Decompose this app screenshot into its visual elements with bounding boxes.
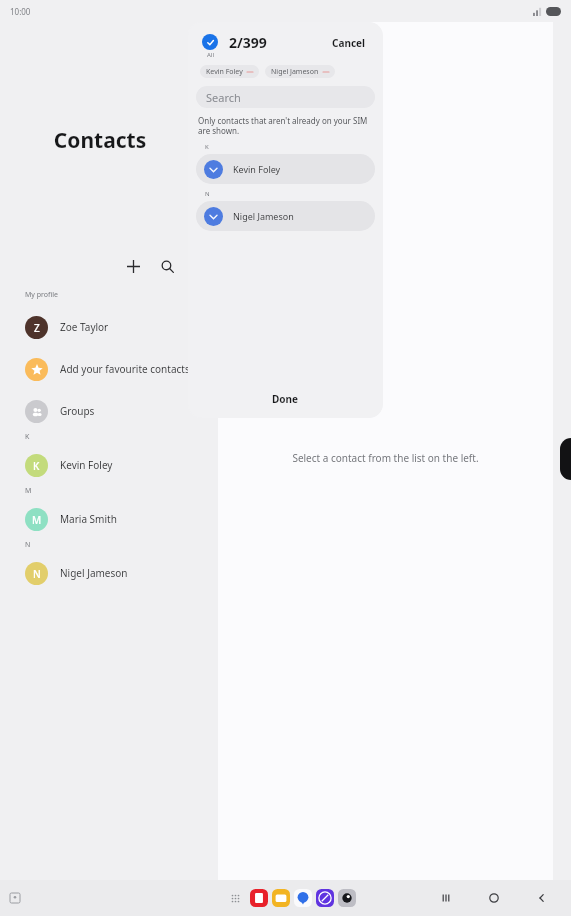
staticText: 2/399 xyxy=(229,33,267,52)
button[interactable]: Camera xyxy=(338,889,356,907)
staticText: All xyxy=(207,51,214,59)
staticText: M xyxy=(32,513,42,527)
staticText: My profile xyxy=(25,290,58,300)
staticText: 10:00 xyxy=(10,6,31,17)
button[interactable]: Nigel Jameson xyxy=(196,201,375,231)
button[interactable]: Recents xyxy=(431,883,461,913)
button[interactable]: Z xyxy=(0,306,200,348)
button[interactable]: Back xyxy=(527,883,557,913)
staticText: Maria Smith xyxy=(60,512,117,526)
button[interactable]: My Files xyxy=(272,889,290,907)
staticText: Nigel Jameson xyxy=(60,566,128,580)
button[interactable]: Notes xyxy=(5,888,25,908)
button[interactable]: Add your favourite contacts xyxy=(0,348,200,390)
button[interactable]: Messages xyxy=(294,889,312,907)
button[interactable]: Done xyxy=(188,380,383,418)
button[interactable]: K xyxy=(0,444,200,486)
button[interactable]: Groups xyxy=(0,390,200,432)
button[interactable]: Home xyxy=(479,883,509,913)
staticText: Search xyxy=(206,90,241,105)
staticText: Kevin Foley xyxy=(206,67,243,77)
staticText: Nigel Jameson xyxy=(271,67,319,77)
button[interactable]: Search xyxy=(196,86,375,108)
button[interactable]: Nigel Jameson xyxy=(265,65,335,78)
staticText: Add your favourite contacts xyxy=(60,362,190,376)
button[interactable]: Add contact xyxy=(118,251,148,281)
staticText: Kevin Foley xyxy=(233,163,281,175)
button[interactable]: Notes app xyxy=(250,889,268,907)
staticText: Done xyxy=(272,392,299,406)
button[interactable]: N xyxy=(0,552,200,594)
staticText: N xyxy=(25,540,31,550)
staticText: K xyxy=(33,459,40,473)
staticText: Only contacts that aren't already on you… xyxy=(198,115,368,136)
staticText: K xyxy=(205,143,209,151)
staticText: K xyxy=(25,432,30,442)
button[interactable]: Kevin Foley xyxy=(196,154,375,184)
button[interactable]: All apps xyxy=(224,887,246,909)
button[interactable]: Internet xyxy=(316,889,334,907)
staticText: Zoe Taylor xyxy=(60,320,109,334)
staticText: Contacts xyxy=(0,126,200,155)
staticText: M xyxy=(25,486,32,496)
staticText: Select a contact from the list on the le… xyxy=(218,451,553,465)
staticText: Kevin Foley xyxy=(60,458,113,472)
staticText: Nigel Jameson xyxy=(233,210,294,222)
button[interactable]: All xyxy=(202,34,218,59)
staticText: Z xyxy=(34,321,40,335)
button[interactable]: M xyxy=(0,498,200,540)
staticText: N xyxy=(33,567,41,581)
staticText: N xyxy=(205,190,210,198)
button[interactable]: Edge panel handle xyxy=(560,438,571,480)
button[interactable]: Cancel xyxy=(329,37,369,57)
staticText: Groups xyxy=(60,404,95,418)
button[interactable]: Search xyxy=(152,251,182,281)
button[interactable]: Kevin Foley xyxy=(200,65,259,78)
staticText: Cancel xyxy=(332,37,366,50)
